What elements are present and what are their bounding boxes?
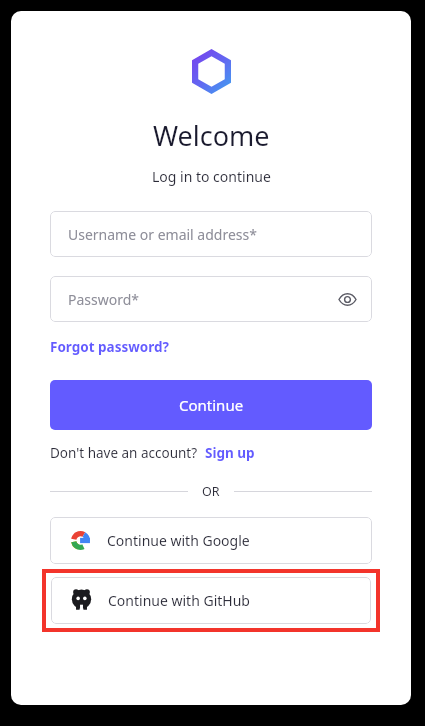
- staticText: OR: [202, 483, 220, 500]
- staticText: Continue: [179, 395, 244, 415]
- staticText: Forgot password?: [50, 338, 169, 356]
- button[interactable]: Continue with GitHub: [51, 577, 371, 624]
- button[interactable]: Password*: [50, 276, 372, 322]
- staticText: Log in to continue: [152, 167, 271, 186]
- staticText: Continue with Google: [107, 531, 250, 550]
- button[interactable]: Show password: [333, 285, 361, 313]
- staticText: Username or email address*: [68, 225, 257, 244]
- button[interactable]: Forgot password?: [50, 336, 169, 358]
- staticText: Don't have an account?: [50, 444, 198, 462]
- staticText: Continue with GitHub: [108, 591, 250, 610]
- staticText: Sign up: [205, 444, 255, 462]
- staticText: Welcome: [153, 117, 270, 154]
- button[interactable]: Continue: [50, 380, 372, 430]
- button[interactable]: Continue with Google: [50, 517, 372, 564]
- staticText: Password*: [68, 290, 140, 309]
- button[interactable]: Sign up: [205, 444, 255, 462]
- button[interactable]: Username or email address*: [50, 211, 372, 257]
